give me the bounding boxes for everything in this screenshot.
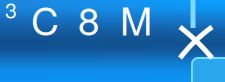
- staticText: M: [120, 0, 152, 46]
- staticText: 3: [5, 0, 17, 24]
- staticText: C: [31, 0, 59, 46]
- staticText: 8: [78, 0, 99, 46]
